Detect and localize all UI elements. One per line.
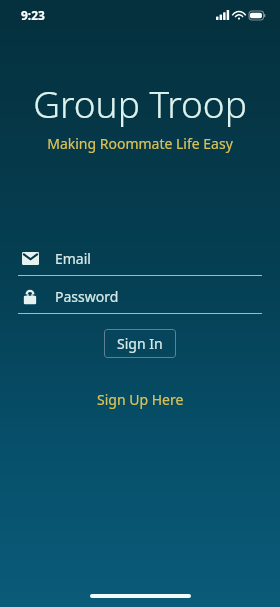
button[interactable]: Sign In <box>104 329 176 358</box>
staticText: Group Troop <box>33 78 247 128</box>
staticText: 9:23 <box>21 7 45 23</box>
staticText: Password <box>55 287 119 306</box>
button[interactable]: Password <box>18 285 262 314</box>
button[interactable]: Email <box>18 247 262 276</box>
staticText: Sign In <box>117 334 163 353</box>
staticText: Email <box>55 249 91 268</box>
staticText: Making Roommate Life Easy <box>47 134 233 153</box>
staticText: Sign Up Here <box>97 390 184 409</box>
button[interactable]: Sign Up Here <box>89 386 192 413</box>
other: Password <box>23 289 37 305</box>
other: Email <box>22 252 39 265</box>
